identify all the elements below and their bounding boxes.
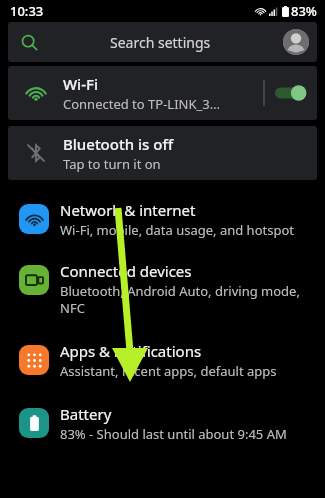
staticText: Bluetooth is off (63, 134, 174, 154)
staticText: Wi-Fi, mobile, data usage, and hotspot (60, 221, 294, 239)
button[interactable]: Wi-Fi (8, 66, 317, 120)
button[interactable]: Battery (0, 392, 325, 455)
staticText: Tap to turn it on (63, 155, 161, 173)
button[interactable]: Apps & notifications (0, 329, 325, 392)
button[interactable]: Bluetooth is off (8, 126, 317, 180)
staticText: Battery (60, 404, 112, 424)
button[interactable]: Wi-Fi toggle (275, 80, 307, 106)
staticText: Assistant, recent apps, default apps (60, 362, 277, 380)
staticText: 10:33 (10, 2, 44, 20)
staticText: Wi-Fi (63, 74, 98, 94)
button[interactable]: Network & internet (0, 190, 325, 249)
staticText: 83% - Should last until about 9:45 AM (60, 425, 287, 443)
staticText: Bluetooth, Android Auto, driving mode, N… (60, 282, 307, 317)
staticText: Connected devices (60, 261, 192, 281)
button[interactable]: Connected devices (0, 249, 325, 329)
staticText: Search settings (110, 33, 211, 52)
button[interactable]: Search settings (8, 22, 317, 62)
staticText: Connected to TP-LINK_3… (63, 95, 220, 113)
button[interactable]: Account (283, 29, 309, 55)
staticText: 83% (291, 2, 317, 20)
staticText: Apps & notifications (60, 341, 202, 361)
staticText: Network & internet (60, 200, 196, 220)
